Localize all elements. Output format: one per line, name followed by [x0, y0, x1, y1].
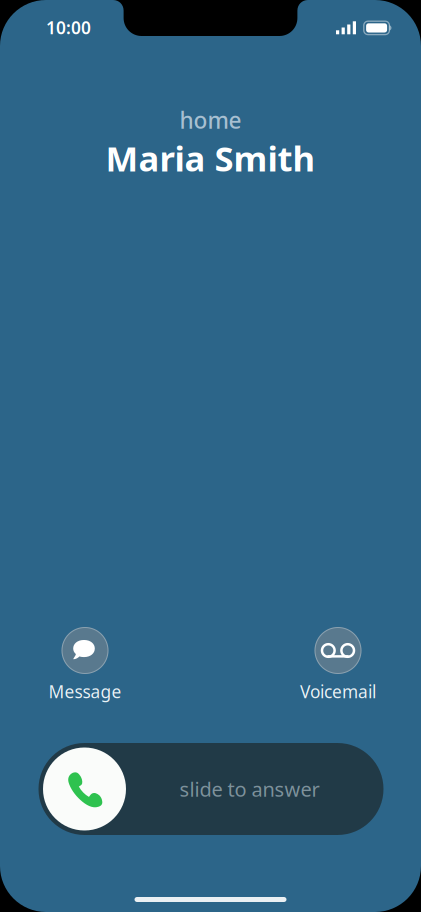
button[interactable]: Voicemail	[278, 627, 398, 700]
staticText: 10:00	[46, 16, 91, 39]
button[interactable]: Message	[25, 627, 145, 700]
staticText: slide to answer	[179, 776, 319, 802]
staticText: home	[179, 105, 241, 135]
staticText: Message	[48, 680, 121, 703]
staticText: Maria Smith	[105, 135, 315, 181]
staticText: Voicemail	[300, 680, 376, 703]
button[interactable]: slide to answer	[38, 743, 383, 835]
